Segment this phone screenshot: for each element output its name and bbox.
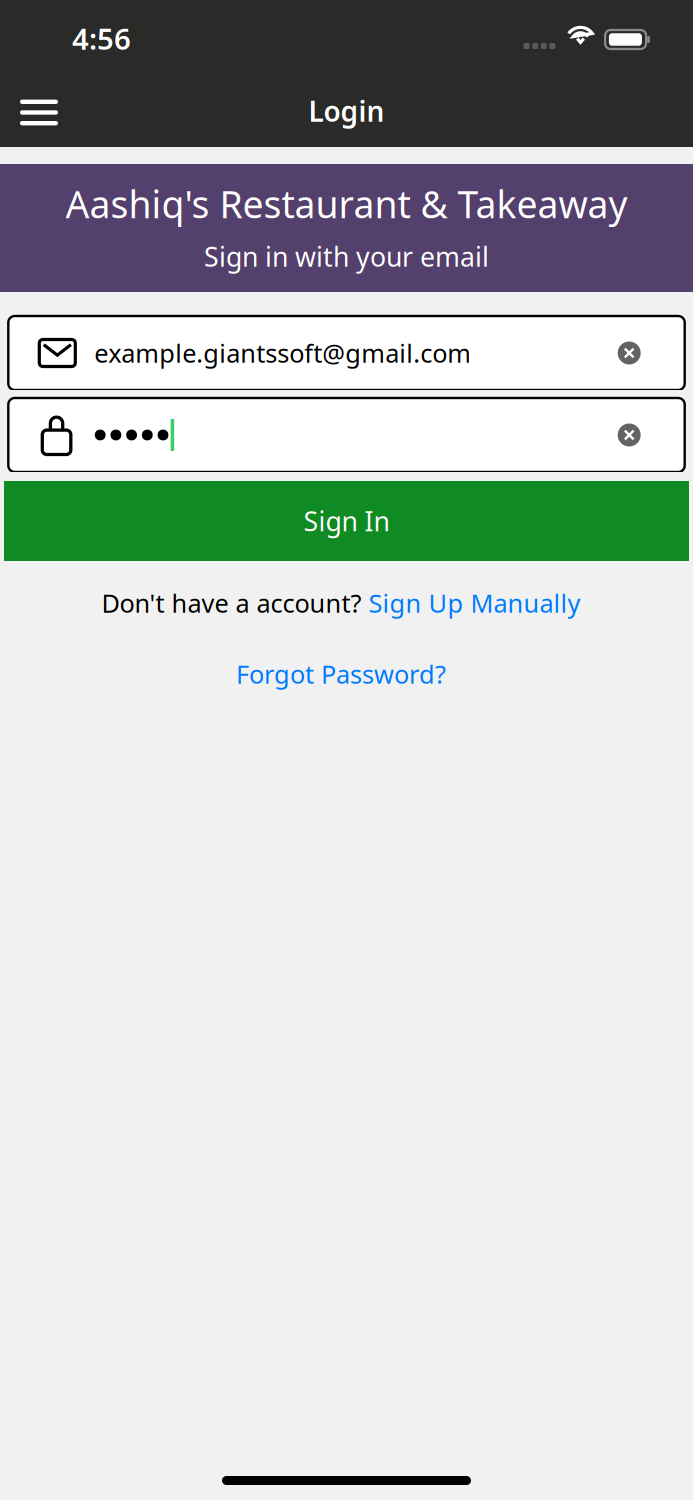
staticText: Sign In <box>303 503 389 539</box>
staticText: Sign in with your email <box>204 239 489 274</box>
staticText: Forgot Password? <box>236 657 446 691</box>
button[interactable]: Forgot Password? <box>236 657 446 691</box>
button[interactable]: Password <box>8 398 685 472</box>
staticText: Don't have a account? <box>101 586 368 620</box>
staticText: Login <box>308 92 384 130</box>
staticText: Sign Up Manually <box>368 586 580 620</box>
button[interactable]: Sign In <box>4 481 689 561</box>
button[interactable]: Clear password <box>598 400 685 470</box>
button[interactable]: Menu <box>0 74 78 144</box>
staticText: Aashiq's Restaurant & Takeaway <box>65 179 627 229</box>
staticText: 4:56 <box>72 19 131 58</box>
button[interactable]: Sign Up Manually <box>368 586 580 620</box>
button[interactable]: Email address <box>8 316 685 390</box>
staticText: example.giantssoft@gmail.com <box>94 336 471 370</box>
button[interactable]: Clear email <box>598 318 685 388</box>
